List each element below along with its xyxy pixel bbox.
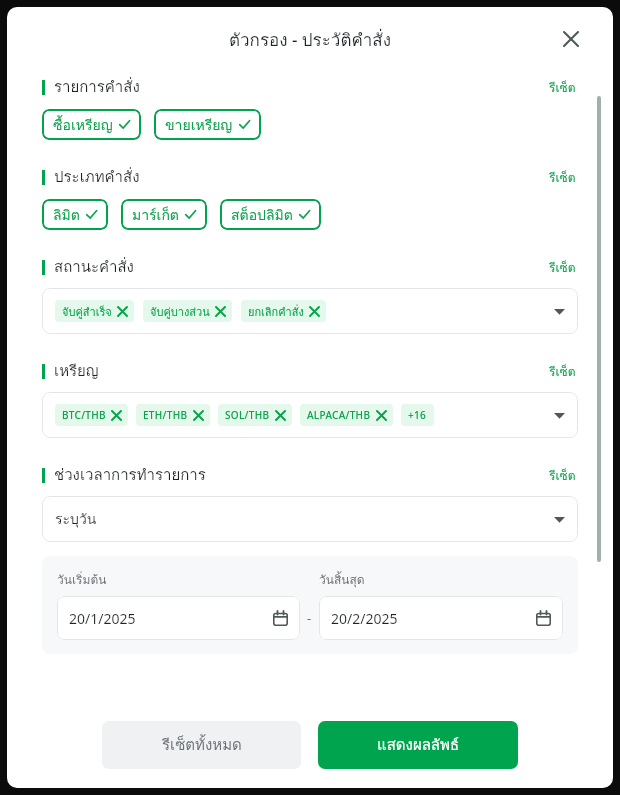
button[interactable]: แสดงผลลัพธ์ bbox=[318, 721, 518, 769]
staticText: รีเซ็ต bbox=[549, 362, 576, 381]
button[interactable]: Close bbox=[557, 25, 585, 53]
button[interactable]: ยกเลิกคำสั่ง bbox=[241, 300, 326, 322]
button[interactable]: BTC/THB bbox=[42, 392, 578, 438]
staticText: ช่วงเวลาการทำรายการ bbox=[54, 463, 206, 487]
staticText: แสดงผลลัพธ์ bbox=[377, 733, 460, 757]
staticText: รายการคำสั่ง bbox=[54, 75, 140, 99]
button[interactable]: รีเซ็ต bbox=[547, 464, 578, 487]
staticText: - bbox=[307, 609, 312, 627]
button[interactable]: ระบุวัน bbox=[42, 496, 578, 542]
other: Pick date bbox=[536, 611, 551, 626]
staticText: รีเซ็ต bbox=[549, 466, 576, 485]
button[interactable]: ซื้อเหรียญ bbox=[42, 109, 141, 140]
other: Expand bbox=[554, 306, 565, 317]
button[interactable]: รีเซ็ต bbox=[547, 360, 578, 383]
button[interactable]: SOL/THB bbox=[218, 404, 292, 426]
staticText: ยกเลิกคำสั่ง bbox=[248, 303, 304, 320]
staticText: สถานะคำสั่ง bbox=[54, 255, 134, 279]
staticText: 20/2/2025 bbox=[331, 609, 398, 628]
button[interactable]: BTC/THB bbox=[55, 404, 128, 426]
staticText: จับคู่สำเร็จ bbox=[62, 303, 112, 320]
other: Expand bbox=[554, 514, 565, 525]
button[interactable]: มาร์เก็ต bbox=[121, 199, 207, 230]
button[interactable]: รีเซ็ต bbox=[547, 166, 578, 189]
button[interactable]: ขายเหรียญ bbox=[154, 109, 261, 140]
staticText: รีเซ็ต bbox=[549, 168, 576, 187]
staticText: ขายเหรียญ bbox=[165, 114, 233, 136]
staticText: ALPACA/THB bbox=[307, 408, 371, 422]
button[interactable]: 20/1/2025 bbox=[57, 596, 300, 640]
other: Pick date bbox=[273, 611, 288, 626]
button[interactable]: รีเซ็ตทั้งหมด bbox=[102, 721, 301, 769]
button[interactable]: รีเซ็ต bbox=[547, 256, 578, 279]
button[interactable]: จับคู่สำเร็จ bbox=[55, 300, 134, 322]
button[interactable]: ลิมิต bbox=[42, 199, 108, 230]
staticText: จับคู่บางส่วน bbox=[150, 303, 210, 320]
staticText: BTC/THB bbox=[62, 408, 106, 422]
staticText: มาร์เก็ต bbox=[132, 204, 179, 226]
staticText: รีเซ็ต bbox=[549, 258, 576, 277]
staticText: ประเภทคำสั่ง bbox=[54, 165, 140, 189]
button[interactable]: จับคู่สำเร็จ bbox=[42, 288, 578, 334]
button[interactable]: สต็อปลิมิต bbox=[220, 199, 321, 230]
staticText: ตัวกรอง - ประวัติคำสั่ง bbox=[229, 26, 392, 53]
staticText: ลิมิต bbox=[53, 204, 80, 226]
staticText: สต็อปลิมิต bbox=[231, 204, 293, 226]
staticText: รีเซ็ตทั้งหมด bbox=[162, 733, 242, 757]
button[interactable]: รีเซ็ต bbox=[547, 76, 578, 99]
button[interactable]: จับคู่บางส่วน bbox=[143, 300, 232, 322]
staticText: ระบุวัน bbox=[55, 508, 97, 530]
staticText: เหรียญ bbox=[54, 359, 99, 383]
staticText: +16 bbox=[408, 408, 427, 422]
other: Expand bbox=[554, 410, 565, 421]
button[interactable]: ALPACA/THB bbox=[300, 404, 393, 426]
staticText: ETH/THB bbox=[143, 408, 188, 422]
staticText: ซื้อเหรียญ bbox=[53, 114, 113, 136]
staticText: วันเริ่มต้น bbox=[57, 570, 107, 589]
staticText: SOL/THB bbox=[225, 408, 270, 422]
staticText: รีเซ็ต bbox=[549, 78, 576, 97]
button[interactable]: 20/2/2025 bbox=[319, 596, 563, 640]
staticText: 20/1/2025 bbox=[69, 609, 136, 628]
button[interactable]: +16 bbox=[401, 404, 434, 426]
button[interactable]: ETH/THB bbox=[136, 404, 210, 426]
staticText: วันสิ้นสุด bbox=[319, 570, 365, 589]
